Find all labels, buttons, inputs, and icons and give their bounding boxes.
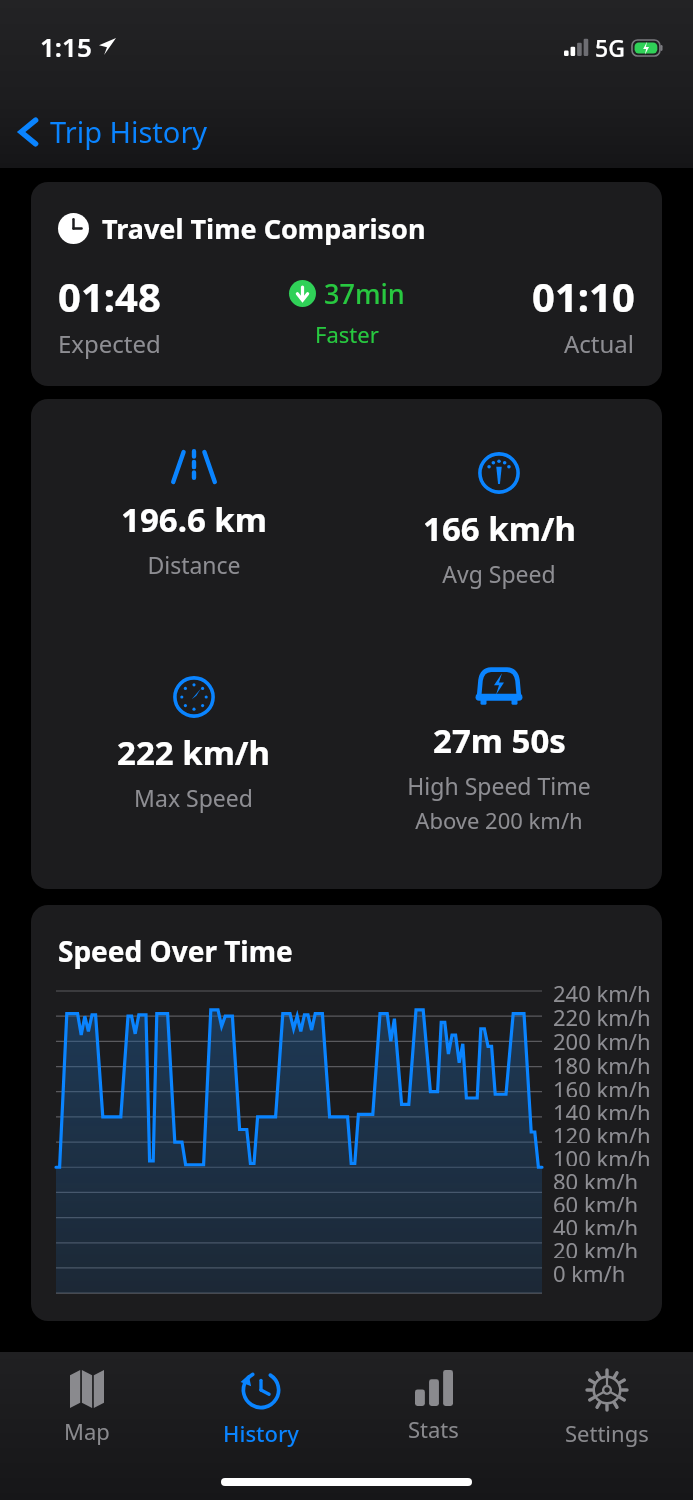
staticText: Distance <box>147 549 241 580</box>
staticText: 222 km/h <box>117 730 270 775</box>
button[interactable]: Stats <box>347 1366 520 1448</box>
staticText: 0 km/h <box>553 1258 626 1288</box>
staticText: 40 km/h <box>553 1212 638 1235</box>
button[interactable]: History <box>174 1366 347 1452</box>
staticText: Stats <box>408 1414 459 1444</box>
staticText: Travel Time Comparison <box>102 210 426 247</box>
staticText: Speed Over Time <box>58 932 293 970</box>
staticText: Map <box>64 1416 110 1446</box>
staticText: 220 km/h <box>553 1002 651 1026</box>
staticText: 20 km/h <box>553 1235 638 1258</box>
button[interactable]: Travel Time Comparison <box>31 182 662 386</box>
staticText: Above 200 km/h <box>415 805 583 835</box>
button[interactable]: Distance <box>41 447 346 580</box>
staticText: History <box>223 1418 299 1448</box>
staticText: 200 km/h <box>553 1026 651 1050</box>
staticText: 01:48 <box>58 269 161 323</box>
staticText: Faster <box>315 319 379 349</box>
staticText: 80 km/h <box>553 1166 638 1189</box>
staticText: 100 km/h <box>553 1143 651 1166</box>
staticText: 180 km/h <box>553 1050 651 1074</box>
staticText: Actual <box>564 327 635 360</box>
other: High speed time <box>474 666 524 706</box>
staticText: 166 km/h <box>423 506 576 551</box>
button[interactable]: Average speed <box>346 452 652 589</box>
staticText: 196.6 km <box>121 497 267 542</box>
staticText: 37min <box>324 275 405 312</box>
staticText: 5G <box>595 32 625 63</box>
button[interactable]: Speed Over Time <box>31 905 662 1321</box>
staticText: 140 km/h <box>553 1097 651 1120</box>
staticText: Avg Speed <box>442 558 556 589</box>
staticText: Expected <box>58 327 161 360</box>
button[interactable]: Trip History <box>12 106 214 157</box>
staticText: Trip History <box>50 112 208 151</box>
staticText: 240 km/h <box>553 978 651 1002</box>
other: Distance <box>168 447 220 485</box>
staticText: 01:10 <box>532 269 635 323</box>
button[interactable]: Map <box>0 1366 174 1450</box>
staticText: 60 km/h <box>553 1189 638 1212</box>
staticText: Max Speed <box>134 782 253 813</box>
button[interactable]: Settings <box>520 1366 693 1452</box>
other: Average speed <box>478 452 520 494</box>
button[interactable]: High speed time <box>346 666 652 835</box>
other: Max speed <box>173 676 215 718</box>
staticText: 1:15 <box>40 29 92 64</box>
button[interactable]: Max speed <box>41 676 346 813</box>
staticText: 120 km/h <box>553 1120 651 1143</box>
staticText: 160 km/h <box>553 1074 651 1097</box>
staticText: High Speed Time <box>407 770 591 801</box>
staticText: Settings <box>565 1418 649 1448</box>
staticText: 27m 50s <box>433 718 566 763</box>
